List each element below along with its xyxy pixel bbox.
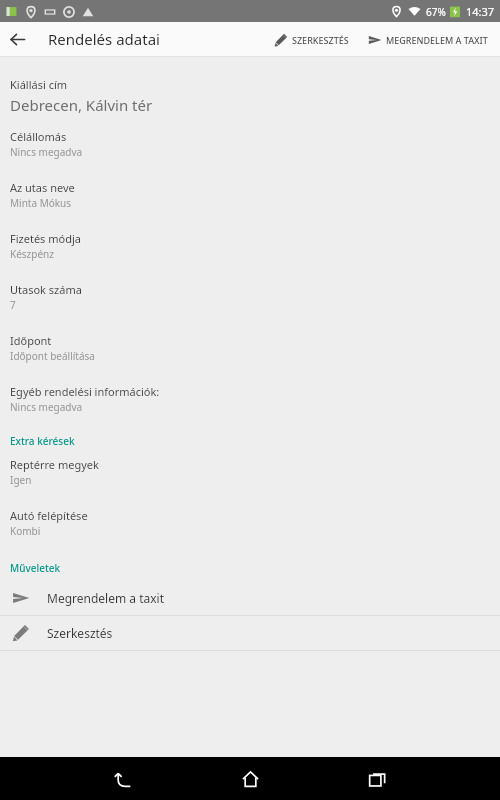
staticText: Egyéb rendelési információk: xyxy=(10,384,160,399)
staticText: 14:37 xyxy=(466,4,495,19)
staticText: Nincs megadva xyxy=(10,400,83,414)
staticText: Kombi xyxy=(10,524,41,538)
button[interactable]: Recent apps xyxy=(357,759,397,799)
staticText: Reptérre megyek xyxy=(10,457,99,472)
button[interactable]: Utasok száma xyxy=(0,280,500,314)
button[interactable]: Szerkesztés xyxy=(0,616,500,650)
staticText: Extra kérések xyxy=(10,434,75,448)
staticText: 67% xyxy=(426,5,446,19)
staticText: Rendelés adatai xyxy=(48,29,160,49)
staticText: Készpénz xyxy=(10,247,54,261)
button[interactable]: Időpont xyxy=(0,331,500,365)
staticText: Szerkesztés xyxy=(47,625,113,641)
button[interactable]: Back xyxy=(0,22,34,56)
staticText: MEGRENDELEM A TAXIT xyxy=(386,34,488,46)
button[interactable]: SZERKESZTÉS xyxy=(267,28,355,51)
button[interactable]: Egyéb rendelési információk: xyxy=(0,382,500,416)
staticText: Időpont beállítása xyxy=(10,349,95,363)
staticText: Műveletek xyxy=(10,561,61,575)
staticText: Fizetés módja xyxy=(10,231,81,246)
staticText: Minta Mókus xyxy=(10,196,72,210)
staticText: Megrendelem a taxit xyxy=(47,590,164,606)
staticText: Igen xyxy=(10,473,32,487)
button[interactable]: Kiállási cím xyxy=(0,75,500,117)
button[interactable]: Célállomás xyxy=(0,127,500,161)
staticText: Nincs megadva xyxy=(10,145,83,159)
button[interactable]: MEGRENDELEM A TAXIT xyxy=(361,28,494,51)
button[interactable]: Fizetés módja xyxy=(0,229,500,263)
button[interactable]: Az utas neve xyxy=(0,178,500,212)
staticText: Debrecen, Kálvin tér xyxy=(10,95,153,115)
staticText: Utasok száma xyxy=(10,282,82,297)
button[interactable]: Reptérre megyek xyxy=(0,455,500,489)
staticText: Autó felépítése xyxy=(10,508,88,523)
button[interactable]: Megrendelem a taxit xyxy=(0,581,500,615)
button[interactable]: Home xyxy=(230,759,270,799)
staticText: 7 xyxy=(10,298,16,312)
staticText: Kiállási cím xyxy=(10,77,68,92)
staticText: Időpont xyxy=(10,333,52,348)
staticText: Az utas neve xyxy=(10,180,75,195)
staticText: Célállomás xyxy=(10,129,67,144)
staticText: SZERKESZTÉS xyxy=(292,34,349,46)
button[interactable]: Autó felépítése xyxy=(0,506,500,540)
button[interactable]: Back xyxy=(103,759,143,799)
